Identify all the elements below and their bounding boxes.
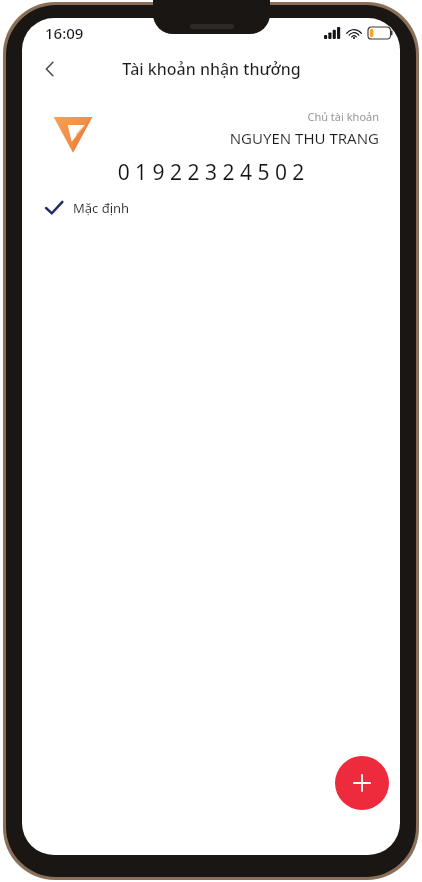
staticText: Mặc định [73, 199, 130, 217]
button[interactable]: Add account [335, 756, 389, 810]
button[interactable]: Chủ tài khoản [33, 101, 389, 227]
staticText: 16:09 [45, 23, 84, 43]
staticText: Chủ tài khoản [307, 109, 379, 124]
staticText: NGUYEN THU TRANG [229, 128, 379, 148]
staticText: 0 1 9 2 2 3 2 4 5 0 2 [43, 158, 379, 187]
staticText: Tài khoản nhận thưởng [122, 58, 301, 80]
button[interactable]: Back [30, 49, 70, 89]
button[interactable]: Mặc định [43, 196, 130, 220]
